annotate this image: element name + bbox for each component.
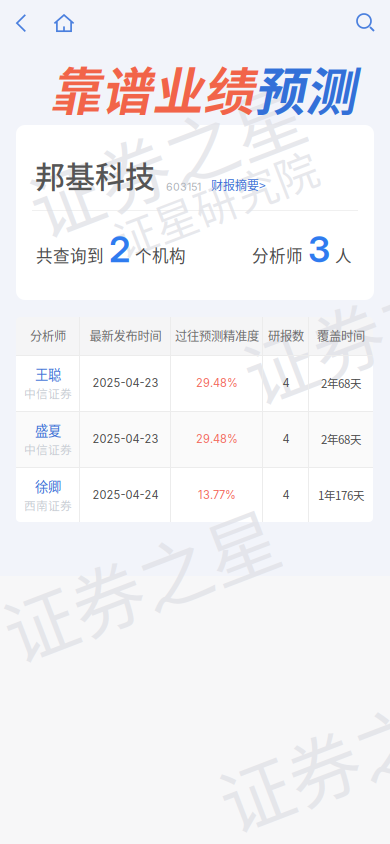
staticText: 过往预测精准度 <box>175 327 259 344</box>
button[interactable]: 盛夏 <box>16 411 373 466</box>
staticText: 1年176天 <box>318 487 364 503</box>
staticText: 王聪 <box>35 364 61 384</box>
staticText: 4 <box>282 432 289 446</box>
button[interactable]: 王聪 <box>16 355 373 410</box>
staticText: 证券之星 <box>236 272 390 376</box>
staticText: 人 <box>335 243 352 267</box>
button[interactable]: Back <box>0 0 42 46</box>
staticText: 2年68天 <box>321 375 361 391</box>
staticText: 2年68天 <box>321 431 361 447</box>
staticText: 证星研究院 <box>108 172 323 234</box>
button[interactable]: 徐卿 <box>16 467 373 522</box>
button[interactable]: Home <box>42 0 86 46</box>
staticText: 29.48% <box>196 432 238 446</box>
staticText: 证券之星 <box>22 105 310 209</box>
staticText: 最新发布时间 <box>89 327 161 344</box>
staticText: 研报数 <box>268 327 304 344</box>
staticText: 2025-04-23 <box>92 376 158 390</box>
staticText: 财报摘要> <box>211 176 266 193</box>
staticText: 靠谱业绩 <box>50 52 254 125</box>
staticText: 预测 <box>254 52 356 125</box>
staticText: 13.77% <box>198 488 236 502</box>
staticText: 4 <box>282 488 289 502</box>
staticText: 分析师 <box>252 243 303 267</box>
staticText: 分析师 <box>30 327 66 344</box>
staticText: 中信证券 <box>24 441 72 458</box>
staticText: 覆盖时间 <box>317 327 365 344</box>
staticText: 个机构 <box>135 243 186 267</box>
button[interactable]: Search <box>342 0 390 46</box>
staticText: 西南证券 <box>24 497 72 514</box>
staticText: 徐卿 <box>35 476 61 496</box>
staticText: 4 <box>282 376 289 390</box>
staticText: 603151 <box>166 180 201 193</box>
staticText: 29.48% <box>196 376 238 390</box>
staticText: 3 <box>308 227 330 271</box>
staticText: 中信证券 <box>24 385 72 402</box>
staticText: 2025-04-23 <box>92 432 158 446</box>
staticText: 证券之星 <box>212 700 390 804</box>
staticText: 2025-04-24 <box>92 488 158 502</box>
staticText: 2 <box>109 227 130 271</box>
staticText: 盛夏 <box>35 420 61 440</box>
staticText: 共查询到 <box>36 243 104 267</box>
button[interactable]: 财报摘要> <box>201 176 266 196</box>
staticText: 邦基科技 <box>35 153 155 196</box>
staticText: 证券之星 <box>0 530 284 634</box>
